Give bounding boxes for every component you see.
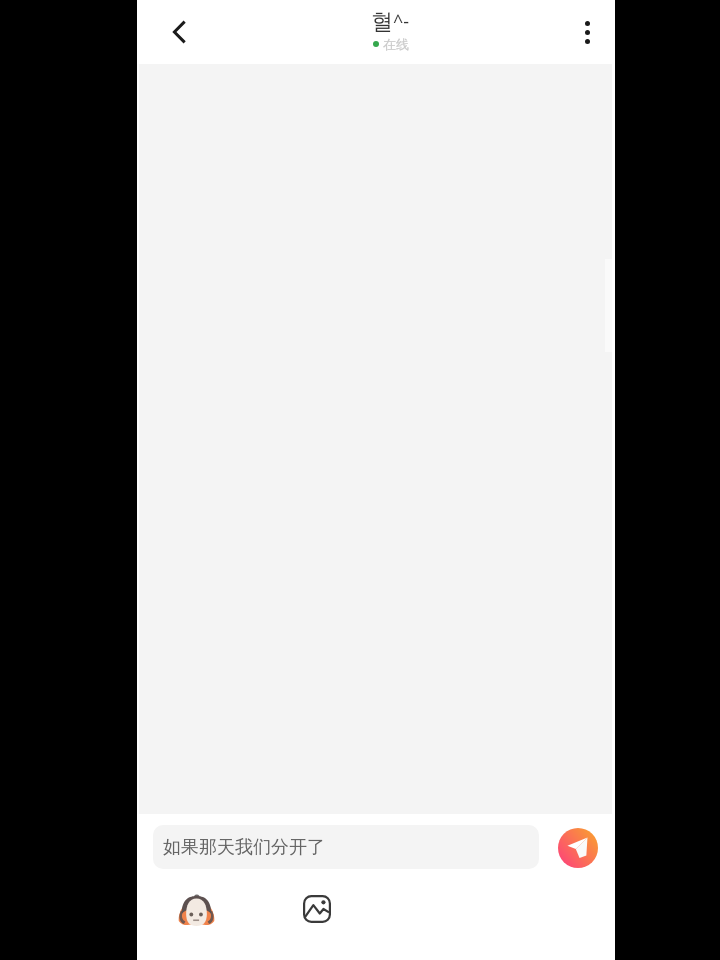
staticText: 혈 xyxy=(371,8,393,36)
button[interactable]: Send xyxy=(558,828,598,868)
button[interactable]: Back xyxy=(157,10,201,54)
staticText: 在线 xyxy=(383,36,409,52)
staticText: 如果那天我们分开了 xyxy=(163,836,325,859)
button[interactable]: Gallery xyxy=(295,887,339,931)
button[interactable]: 如果那天我们分开了 xyxy=(153,825,539,869)
button[interactable]: More options xyxy=(565,10,609,54)
staticText: ^- xyxy=(393,9,410,34)
button[interactable]: Stickers xyxy=(174,888,218,932)
